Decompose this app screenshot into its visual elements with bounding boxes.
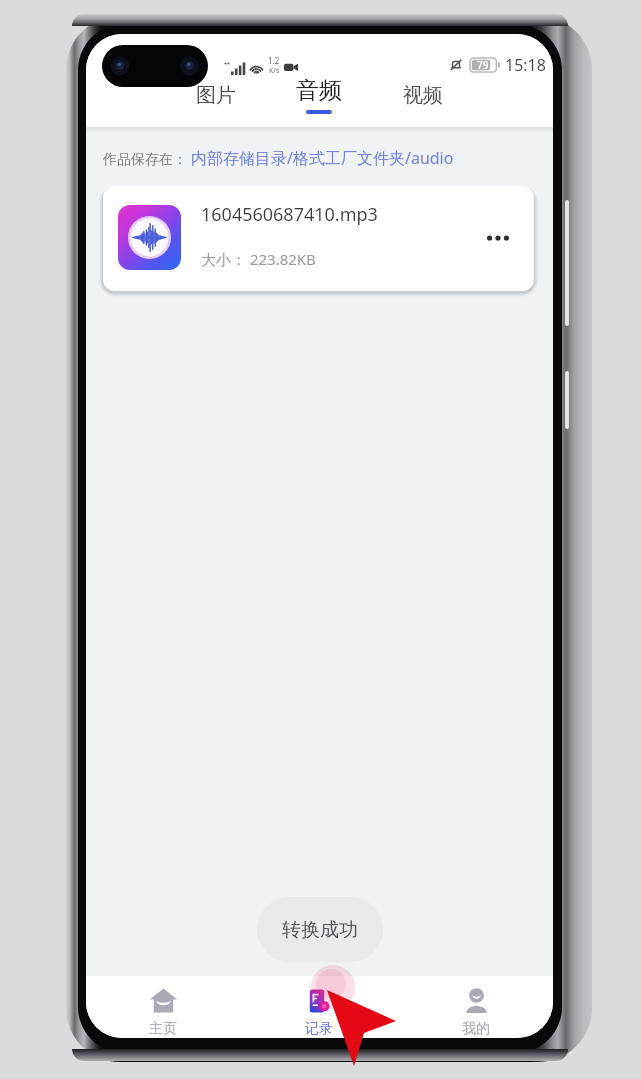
staticText: 视频 xyxy=(403,83,443,108)
button[interactable]: 1604560687410.mp3 xyxy=(103,186,534,291)
staticText: 1604560687410.mp3 xyxy=(201,202,378,227)
button[interactable]: 图片 xyxy=(164,80,268,127)
staticText: 15:18 xyxy=(505,54,546,76)
button[interactable]: 记录 xyxy=(259,976,379,1038)
staticText: K/s xyxy=(269,66,280,76)
button[interactable]: 音频 xyxy=(267,80,371,127)
staticText: 记录 xyxy=(305,1020,333,1038)
staticText: 主页 xyxy=(149,1020,177,1038)
staticText: 作品保存在： xyxy=(103,151,187,169)
button[interactable]: 视频 xyxy=(371,80,475,127)
button[interactable]: 我的 xyxy=(416,976,536,1038)
staticText: 大小： 223.82KB xyxy=(201,249,316,269)
staticText: 图片 xyxy=(196,83,236,108)
staticText: 转换成功 xyxy=(282,918,358,942)
staticText: 内部存储目录/格式工厂文件夹/audio xyxy=(191,147,454,169)
staticText: 我的 xyxy=(462,1020,490,1038)
staticText: 音频 xyxy=(296,76,342,105)
button[interactable]: 主页 xyxy=(103,976,223,1038)
button[interactable]: More options xyxy=(476,216,520,260)
staticText: 79 xyxy=(477,58,489,72)
staticText: 1.2 xyxy=(268,55,280,66)
